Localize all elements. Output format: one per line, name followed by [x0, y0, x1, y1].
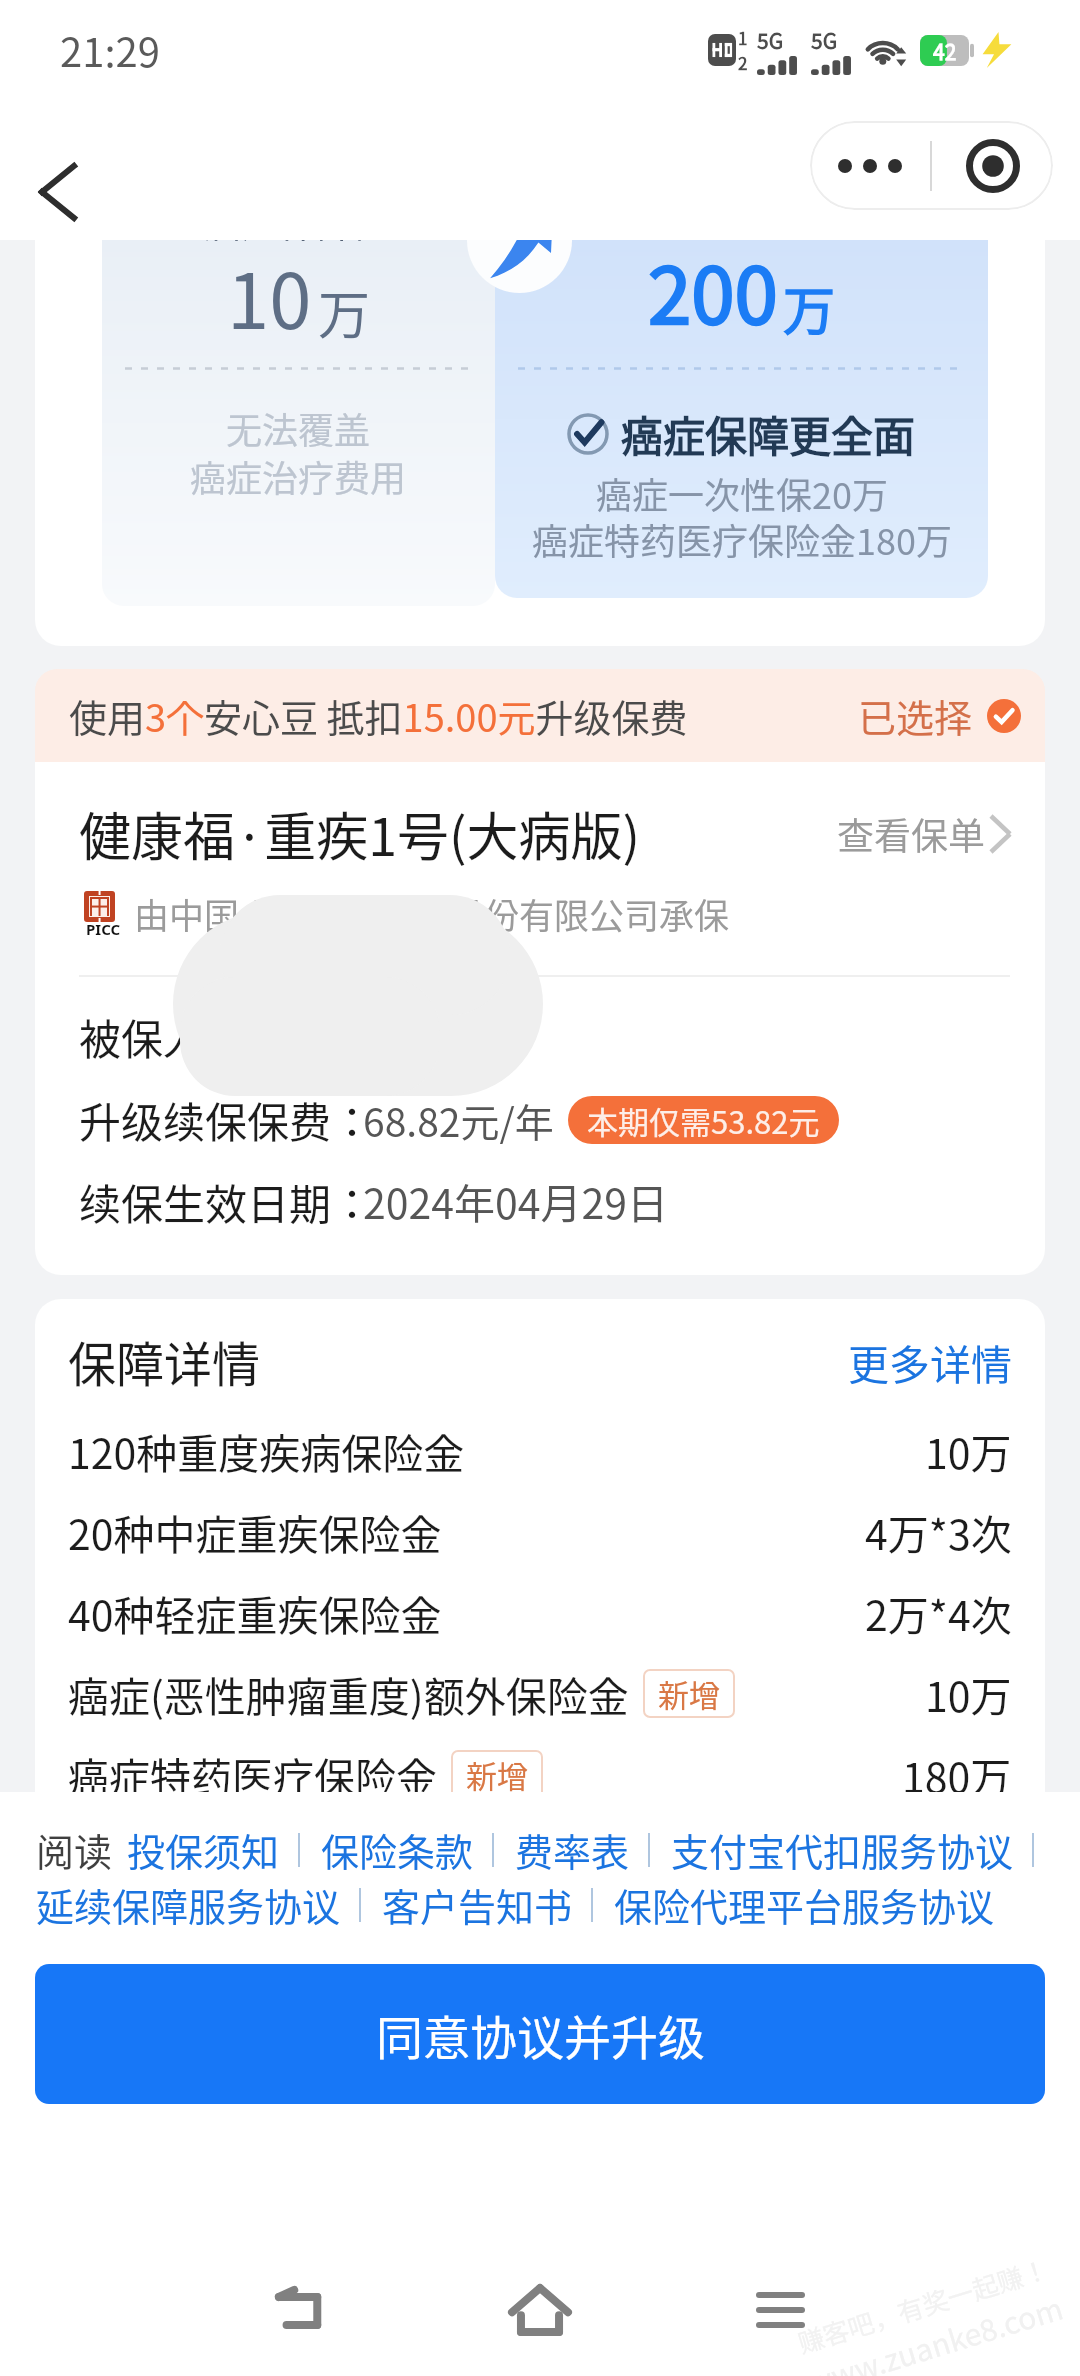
staticText: 查看保单	[837, 807, 985, 861]
button[interactable]: Back	[245, 2255, 355, 2365]
staticText: 42	[933, 36, 957, 66]
staticText: www.zuanke8.com	[802, 2284, 1068, 2376]
staticText: 200	[648, 240, 778, 347]
staticText: 2万*4次	[865, 1583, 1012, 1642]
staticText: 20种中症重疾保险金	[68, 1502, 442, 1561]
button[interactable]: More options	[810, 121, 930, 210]
staticText: 阅读	[36, 1822, 113, 1877]
button[interactable]: 40种轻症重疾保险金	[68, 1572, 1012, 1653]
staticText: 10万	[925, 1664, 1012, 1723]
staticText: 癌症保障更全面	[621, 403, 916, 464]
button[interactable]: 癌症特药医疗保险金	[68, 1734, 1012, 1815]
staticText: 5G	[757, 25, 784, 55]
button[interactable]: 客户告知书	[382, 1877, 573, 1932]
staticText: 新增	[466, 1752, 528, 1797]
staticText: 4万*3次	[865, 1502, 1012, 1561]
staticText: 万	[783, 270, 836, 345]
button[interactable]: 20种中症重疾保险金	[68, 1491, 1012, 1572]
staticText: 健康福·重疾1号(大病版)	[79, 796, 641, 871]
staticText: 1	[738, 25, 748, 50]
staticText: 癌症特药医疗保险金180万	[532, 513, 952, 565]
staticText: 癌症特药医疗保险金	[68, 1745, 437, 1804]
staticText: 新增	[658, 1671, 720, 1716]
staticText: 10	[227, 241, 312, 351]
button[interactable]: Close mini program	[932, 121, 1053, 210]
staticText: 癌症保障险	[203, 240, 394, 248]
staticText: 10万	[925, 1421, 1012, 1480]
staticText: 癌症治疗费用	[190, 450, 407, 502]
staticText: 已选择	[858, 688, 973, 743]
staticText: 赚客吧，有奖一起赚！	[793, 2249, 1054, 2361]
staticText: 保障详情	[68, 1326, 261, 1396]
staticText: 万	[318, 274, 371, 349]
staticText: PICC	[86, 919, 121, 939]
staticText: 2024年04月29日	[363, 1171, 669, 1230]
button[interactable]: 使用3个安心豆 抵扣15.00元升级保费	[35, 669, 1045, 762]
staticText: 升级续保保费：	[79, 1089, 374, 1150]
button[interactable]: 延续保障服务协议	[36, 1877, 341, 1932]
button[interactable]: Menu	[725, 2255, 835, 2365]
button[interactable]: 120种重度疾病保险金	[68, 1410, 1012, 1491]
staticText: 由中国人民健康保险股份有限公司承保	[134, 888, 730, 939]
button[interactable]: 癌症(恶性肿瘤重度)额外保险金	[68, 1653, 1012, 1734]
button[interactable]: 同意协议并升级	[35, 1964, 1045, 2104]
staticText: 120种重度疾病保险金	[68, 1421, 465, 1480]
button[interactable]: Home	[485, 2255, 595, 2365]
staticText: 续保生效日期：	[79, 1171, 374, 1232]
staticText: 40种轻症重疾保险金	[68, 1583, 442, 1642]
button[interactable]: 支付宝代扣服务协议	[671, 1822, 1014, 1877]
staticText: 被保人	[79, 1006, 206, 1067]
staticText: 2	[738, 50, 748, 75]
button[interactable]: Back	[18, 152, 98, 232]
button[interactable]: 投保须知	[127, 1822, 280, 1877]
staticText: 本期仅需53.82元	[587, 1098, 820, 1143]
staticText: 同意协议并升级	[376, 2000, 705, 2068]
staticText: 癌症一次性保20万	[596, 467, 888, 519]
staticText: 21:29	[60, 21, 160, 79]
staticText: 使用3个安心豆 抵扣15.00元升级保费	[69, 688, 688, 743]
staticText: 180万	[902, 1745, 1012, 1804]
button[interactable]: 费率表	[515, 1822, 630, 1877]
staticText: 68.82元/年	[363, 1092, 554, 1148]
staticText: 癌症(恶性肿瘤重度)额外保险金	[68, 1664, 629, 1723]
button[interactable]: 查看保单	[837, 807, 1010, 861]
button[interactable]: 更多详情	[848, 1332, 1012, 1391]
staticText: 5G	[811, 25, 838, 55]
staticText: 无法覆盖	[226, 402, 371, 454]
button[interactable]: 保险条款	[321, 1822, 474, 1877]
button[interactable]: 保险代理平台服务协议	[614, 1877, 995, 1932]
